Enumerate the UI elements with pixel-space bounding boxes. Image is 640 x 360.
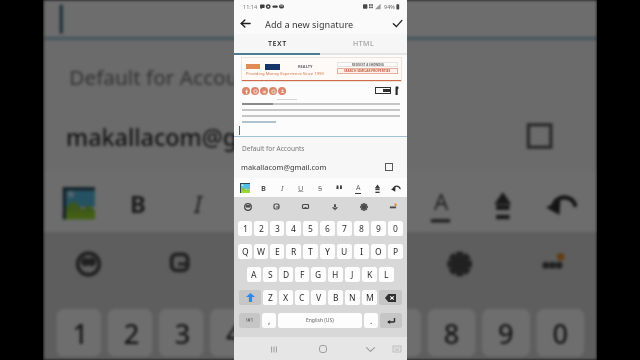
button[interactable]: H xyxy=(328,267,343,282)
button[interactable]: S xyxy=(263,267,277,282)
button[interactable]: 5 xyxy=(264,309,312,357)
button[interactable]: Settings xyxy=(412,232,504,296)
button[interactable]: 9 xyxy=(482,309,530,357)
staticText: E xyxy=(275,246,280,258)
button[interactable]: Voice input xyxy=(319,232,412,296)
button[interactable]: Insert image xyxy=(240,183,250,193)
button[interactable]: . xyxy=(364,313,378,328)
button[interactable]: 0 xyxy=(536,309,584,357)
button[interactable]: I xyxy=(276,182,288,194)
button[interactable]: 4 xyxy=(286,221,301,236)
button[interactable]: More options xyxy=(504,232,597,296)
button[interactable]: N xyxy=(345,290,360,305)
button[interactable]: 8 xyxy=(354,221,369,236)
staticText: 0 xyxy=(552,315,568,354)
button[interactable]: U xyxy=(239,184,277,222)
button[interactable]: !#1 xyxy=(239,313,260,328)
button[interactable]: S xyxy=(300,184,338,222)
button[interactable]: 2 xyxy=(108,309,152,357)
button[interactable]: B xyxy=(328,290,343,305)
button[interactable]: GIF xyxy=(226,232,319,296)
button[interactable]: B xyxy=(257,182,269,194)
staticText: K xyxy=(367,269,373,281)
button[interactable]: Quote xyxy=(360,184,399,222)
button[interactable]: 6 xyxy=(320,221,335,236)
button[interactable]: 7 xyxy=(337,221,352,236)
button[interactable]: E xyxy=(270,244,284,259)
button[interactable]: Save xyxy=(387,13,407,34)
button[interactable]: Z xyxy=(263,290,277,305)
button[interactable]: 0 xyxy=(388,221,403,236)
button[interactable]: R xyxy=(286,244,301,259)
button[interactable]: U xyxy=(295,182,307,194)
button[interactable]: Highlight colour xyxy=(371,182,383,194)
button[interactable]: makallacom@gmail.com xyxy=(44,101,597,171)
button[interactable]: Home xyxy=(312,338,334,360)
button[interactable]: Q xyxy=(238,244,252,259)
button[interactable]: 1 xyxy=(238,221,252,236)
button[interactable]: 3 xyxy=(159,309,204,357)
button[interactable]: Shift xyxy=(239,290,261,305)
button[interactable]: 9 xyxy=(371,221,386,236)
button[interactable]: Settings xyxy=(349,197,378,217)
button[interactable]: Highlight colour xyxy=(482,184,520,222)
button[interactable]: Navigate up xyxy=(234,13,257,34)
button[interactable]: Enter xyxy=(380,313,402,328)
button[interactable]: Emoji xyxy=(44,232,133,296)
staticText: 7 xyxy=(342,223,347,235)
button[interactable]: Stickers xyxy=(133,232,226,296)
button[interactable]: J xyxy=(345,267,360,282)
button[interactable]: English (US) xyxy=(278,313,362,328)
button[interactable]: More options xyxy=(378,197,407,217)
staticText: Y xyxy=(325,246,330,258)
button[interactable]: W xyxy=(254,244,268,259)
button[interactable]: B xyxy=(117,184,156,222)
button[interactable]: F xyxy=(295,267,309,282)
button[interactable]: X xyxy=(279,290,293,305)
button[interactable]: P xyxy=(388,244,403,259)
button[interactable]: Backspace xyxy=(379,290,402,305)
button[interactable]: GIF xyxy=(291,197,320,217)
button[interactable]: I xyxy=(354,244,369,259)
button[interactable]: 8 xyxy=(428,309,476,357)
staticText: A xyxy=(434,187,450,219)
button[interactable]: Text colour xyxy=(352,182,364,194)
button[interactable]: Back xyxy=(359,338,381,360)
button[interactable]: Undo xyxy=(390,182,402,194)
button[interactable]: O xyxy=(371,244,386,259)
button[interactable]: , xyxy=(262,313,276,328)
staticText: 4 xyxy=(291,223,296,235)
button[interactable]: 7 xyxy=(373,309,421,357)
button[interactable]: G xyxy=(311,267,326,282)
button[interactable]: Hide keyboard xyxy=(386,338,407,360)
button[interactable]: 3 xyxy=(270,221,284,236)
button[interactable]: Undo xyxy=(543,184,581,222)
button[interactable]: T xyxy=(303,244,318,259)
button[interactable]: Voice input xyxy=(320,197,349,217)
button[interactable]: S xyxy=(314,182,326,194)
button[interactable]: 4 xyxy=(210,309,258,357)
button[interactable]: A xyxy=(247,267,261,282)
button[interactable]: 5 xyxy=(303,221,318,236)
button[interactable]: makallacom@gmail.com xyxy=(234,156,407,178)
button[interactable]: V xyxy=(311,290,326,305)
button[interactable]: I xyxy=(178,184,216,222)
button[interactable]: Quote xyxy=(333,182,345,194)
button[interactable]: HTML xyxy=(320,34,407,53)
button[interactable]: U xyxy=(337,244,352,259)
button[interactable]: 2 xyxy=(254,221,268,236)
button[interactable]: Text colour xyxy=(421,184,460,222)
button[interactable]: Insert image xyxy=(63,187,95,219)
button[interactable]: K xyxy=(362,267,377,282)
button[interactable]: L xyxy=(379,267,394,282)
button[interactable]: Y xyxy=(320,244,335,259)
button[interactable]: Stickers xyxy=(262,197,291,217)
button[interactable]: C xyxy=(295,290,309,305)
button[interactable]: 6 xyxy=(319,309,367,357)
button[interactable]: Recent apps xyxy=(263,338,285,360)
button[interactable]: D xyxy=(279,267,293,282)
button[interactable]: 1 xyxy=(56,309,101,357)
button[interactable]: Emoji xyxy=(234,197,262,217)
button[interactable]: TEXT xyxy=(234,34,320,53)
button[interactable]: M xyxy=(362,290,377,305)
